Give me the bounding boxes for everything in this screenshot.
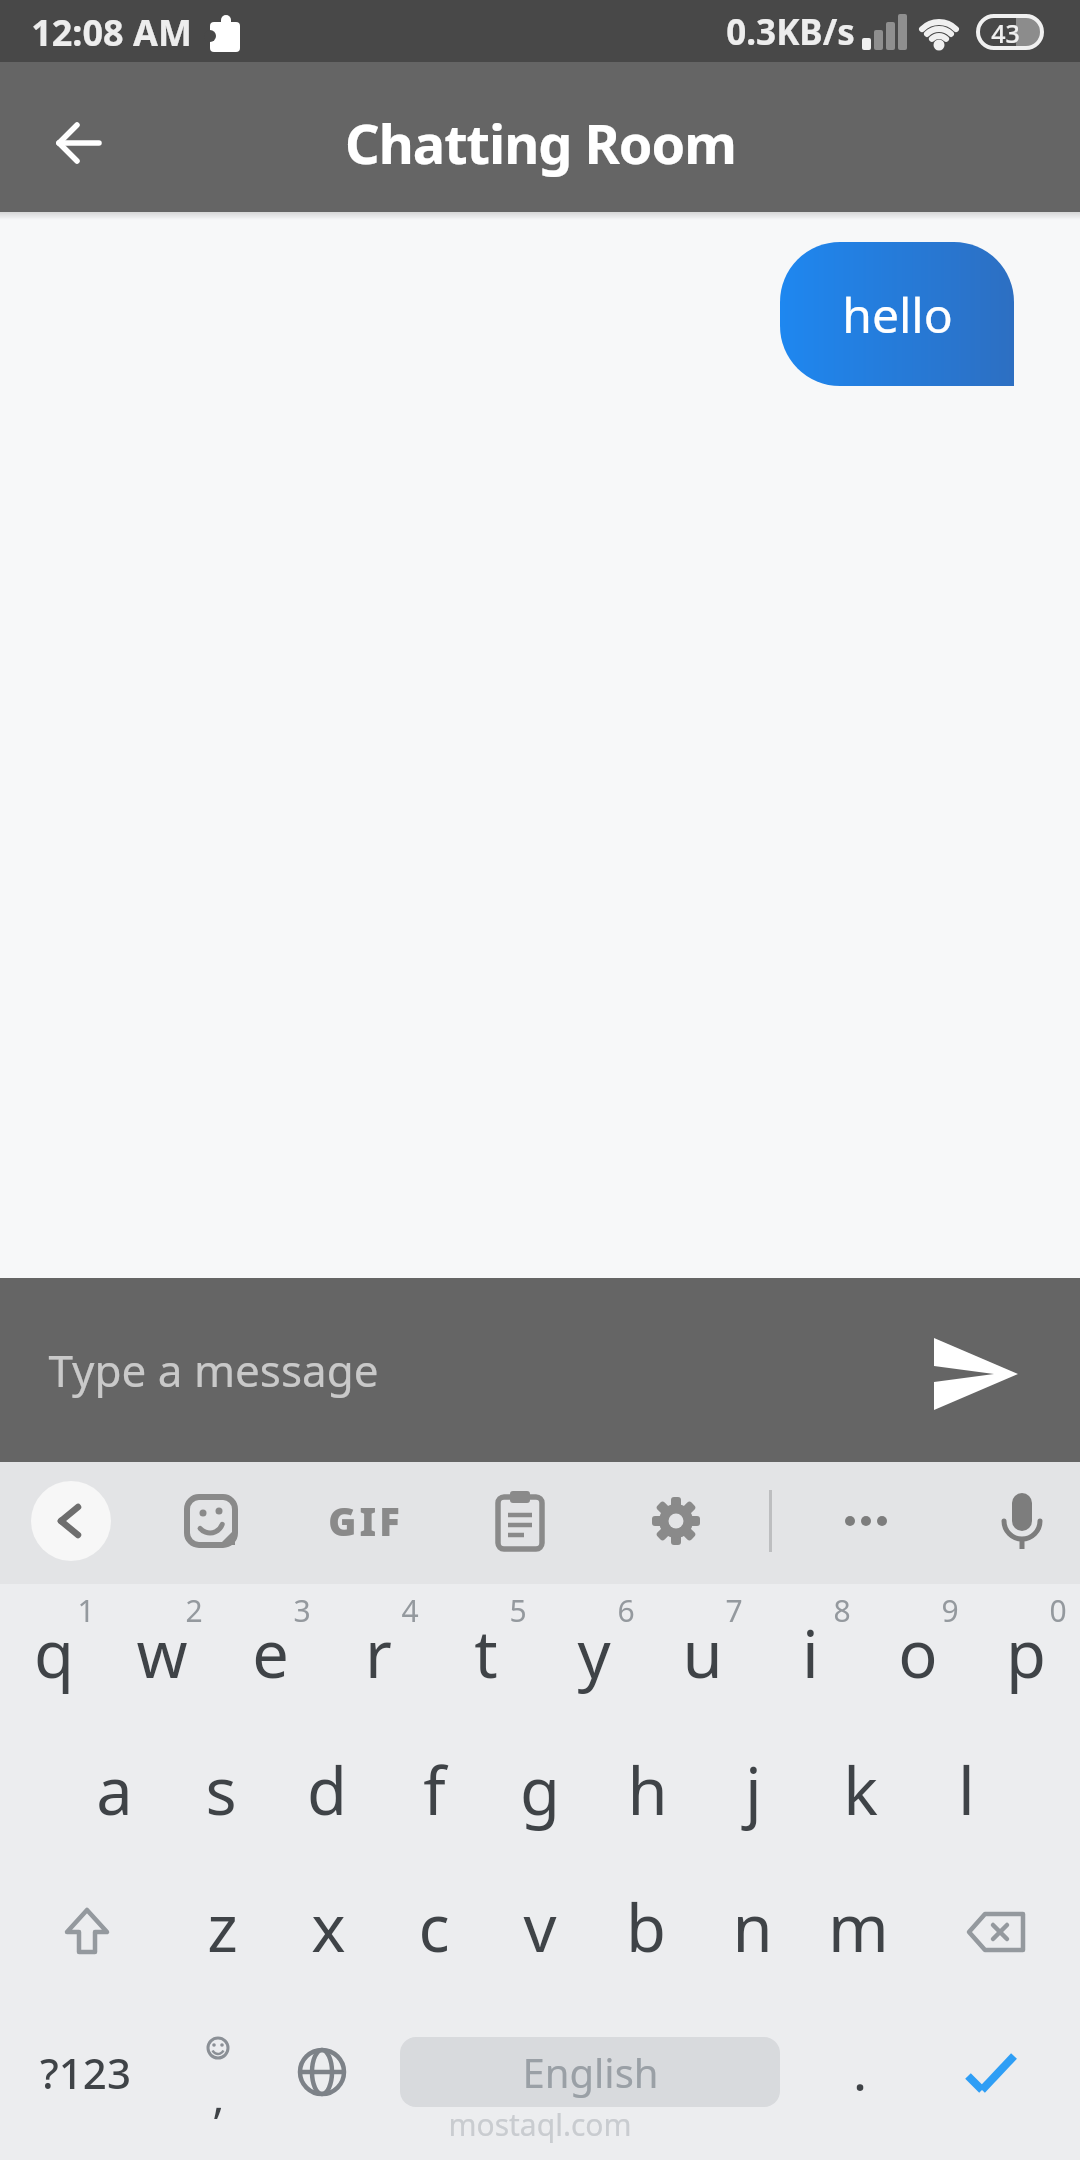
button[interactable]: English (400, 2037, 780, 2107)
staticText: j (745, 1746, 762, 1835)
staticText: b (626, 1883, 666, 1972)
button[interactable]: . (810, 2002, 910, 2142)
staticText: mostaql.com (448, 2104, 632, 2144)
staticText: u (682, 1609, 723, 1698)
button[interactable] (986, 1485, 1058, 1557)
staticText: 9 (941, 1590, 959, 1631)
staticText: e (252, 1609, 289, 1698)
button[interactable]: z (169, 1862, 275, 2002)
button[interactable]: ?123 (15, 2002, 155, 2142)
button[interactable]: q (1, 1588, 107, 1728)
staticText: s (205, 1746, 237, 1835)
button[interactable] (926, 1326, 1022, 1422)
button[interactable]: i (757, 1588, 863, 1728)
button[interactable]: u (649, 1588, 755, 1728)
button[interactable]: b (593, 1862, 699, 2002)
button[interactable]: p (973, 1588, 1079, 1728)
staticText: r (365, 1609, 392, 1698)
button[interactable]: c (381, 1862, 487, 2002)
button[interactable] (640, 1485, 712, 1557)
staticText: l (958, 1746, 975, 1835)
button[interactable]: o (865, 1588, 971, 1728)
staticText: g (520, 1746, 560, 1835)
staticText: 7 (725, 1590, 743, 1631)
button[interactable] (484, 1485, 556, 1557)
staticText: 3 (293, 1590, 311, 1631)
staticText: 2 (185, 1590, 203, 1631)
button[interactable]: n (699, 1862, 805, 2002)
button[interactable]: x (275, 1862, 381, 2002)
staticText: , (212, 2064, 225, 2124)
staticText: 4 (401, 1590, 419, 1631)
button[interactable] (930, 2002, 1050, 2142)
button[interactable]: s (168, 1725, 274, 1865)
staticText: k (843, 1746, 878, 1835)
button[interactable] (30, 95, 126, 191)
button[interactable]: Type a message (30, 1318, 630, 1422)
button[interactable]: g (487, 1725, 593, 1865)
button[interactable]: , (168, 2002, 268, 2142)
button[interactable]: GIF (305, 1485, 425, 1557)
staticText: d (307, 1746, 347, 1835)
staticText: p (1006, 1609, 1046, 1698)
staticText: 43 (991, 16, 1020, 48)
staticText: t (474, 1609, 498, 1698)
staticText: m (828, 1883, 889, 1972)
staticText: z (207, 1883, 238, 1972)
staticText: y (577, 1609, 611, 1698)
staticText: v (523, 1883, 557, 1972)
button[interactable]: m (805, 1862, 911, 2002)
staticText: Type a message (48, 1340, 379, 1400)
staticText: o (898, 1609, 938, 1698)
button[interactable]: w (109, 1588, 215, 1728)
staticText: c (418, 1883, 450, 1972)
button[interactable]: hello (780, 242, 1014, 386)
button[interactable]: y (541, 1588, 647, 1728)
staticText: n (732, 1883, 773, 1972)
button[interactable]: h (594, 1725, 700, 1865)
button[interactable]: r (325, 1588, 431, 1728)
staticText: f (423, 1746, 446, 1835)
staticText: hello (842, 282, 953, 347)
button[interactable]: j (700, 1725, 806, 1865)
staticText: i (802, 1609, 819, 1698)
button[interactable]: e (217, 1588, 323, 1728)
staticText: 0.3KB/s (726, 8, 855, 56)
staticText: 0 (1049, 1590, 1067, 1631)
button[interactable]: d (274, 1725, 380, 1865)
staticText: w (136, 1609, 188, 1698)
staticText: GIF (328, 1495, 403, 1547)
button[interactable] (830, 1485, 902, 1557)
button[interactable]: t (433, 1588, 539, 1728)
button[interactable] (31, 1481, 111, 1561)
button[interactable]: a (61, 1725, 167, 1865)
staticText: q (34, 1609, 74, 1698)
button[interactable]: k (807, 1725, 913, 1865)
staticText: a (96, 1746, 133, 1835)
staticText: 1 (77, 1590, 95, 1631)
staticText: h (627, 1746, 668, 1835)
staticText: 8 (833, 1590, 851, 1631)
button[interactable]: l (913, 1725, 1019, 1865)
staticText: Chatting Room (345, 106, 736, 180)
staticText: 12:08 AM (31, 8, 192, 57)
button[interactable] (272, 2002, 372, 2142)
staticText: 6 (617, 1590, 635, 1631)
staticText: English (522, 2045, 659, 2099)
staticText: x (311, 1883, 346, 1972)
button[interactable]: v (487, 1862, 593, 2002)
button[interactable] (27, 1862, 147, 2002)
button[interactable] (175, 1485, 247, 1557)
staticText: . (853, 2040, 867, 2105)
button[interactable]: f (381, 1725, 487, 1865)
staticText: ?123 (40, 2044, 131, 2101)
button[interactable] (935, 1862, 1055, 2002)
staticText: 5 (509, 1590, 527, 1631)
